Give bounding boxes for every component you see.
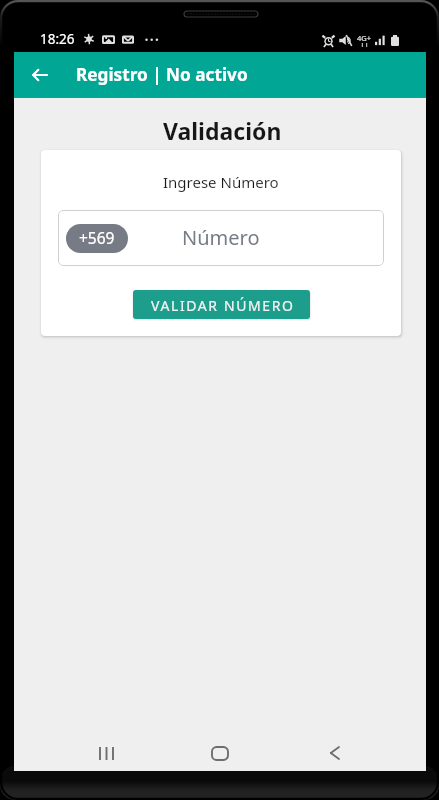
- staticText: 18:26: [40, 30, 75, 48]
- staticText: Validación: [163, 115, 282, 146]
- staticText: Ingrese Número: [163, 172, 279, 192]
- button[interactable]: Back: [310, 729, 358, 777]
- staticText: VALIDAR NÚMERO: [151, 296, 295, 315]
- button[interactable]: Recent apps: [82, 729, 130, 777]
- staticText: +569: [79, 227, 115, 248]
- button[interactable]: +569: [58, 210, 384, 266]
- staticText: Número: [182, 224, 260, 251]
- button[interactable]: Back: [19, 55, 59, 95]
- staticText: 4G+: [357, 33, 372, 43]
- button[interactable]: Home: [196, 729, 244, 777]
- staticText: Registro | No activo: [76, 63, 248, 86]
- button[interactable]: VALIDAR NÚMERO: [133, 290, 310, 319]
